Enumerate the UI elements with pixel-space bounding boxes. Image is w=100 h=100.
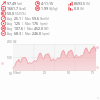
button[interactable]: Next segment [96,66,99,69]
staticText: (ft) [80,7,84,11]
staticText: Max [25,22,31,26]
button[interactable]: Previous segment [1,62,4,65]
staticText: (ft) [13,40,17,44]
button[interactable]: 50.0 [0,11,50,16]
staticText: (kJ/kg) [49,7,58,11]
staticText: / [22,22,24,26]
staticText: 50.0 [7,11,14,16]
button[interactable]: Avg [0,21,100,26]
staticText: Avg [7,17,13,21]
button[interactable]: Avg [0,26,100,31]
staticText: (kcal) [19,7,27,11]
staticText: (ft) [86,2,90,6]
staticText: (rpm) [40,22,48,26]
staticText: Avg [7,32,13,36]
button[interactable]: Avg [0,16,100,21]
staticText: / [24,27,26,31]
staticText: 125 [14,21,21,26]
staticText: (mi) [17,2,23,6]
staticText: 25 [43,71,46,75]
staticText: Max [27,27,33,31]
button[interactable]: 1.99 [34,6,67,11]
staticText: 50 [67,71,70,75]
staticText: 75 [91,71,94,75]
button[interactable]: Chart option [96,46,99,49]
staticText: Avg [7,27,13,31]
staticText: 452.0 [34,26,43,31]
staticText: 246.0 [32,31,41,36]
staticText: 107.6 [14,26,23,31]
button[interactable]: Elevation profile chart [0,40,100,76]
staticText: 50 [9,72,12,76]
button[interactable]: 4:11:15 [34,1,67,6]
staticText: 1.99 [41,6,48,11]
button[interactable]: Avg [0,31,100,36]
button[interactable]: 0.0 [67,6,100,11]
staticText: 1661.7 [7,6,18,11]
staticText: 68.3 [14,31,21,36]
staticText: 59.6 [32,16,39,21]
staticText: 0.0 [74,6,79,11]
staticText: / [22,32,24,36]
staticText: Avg [7,22,13,26]
staticText: 8693.5 [74,1,85,6]
staticText: 176 [32,21,39,26]
staticText: 50.0 (%) [15,12,26,16]
staticText: (W) [44,27,49,31]
staticText: 100 [7,56,12,60]
staticText: (rpm) [42,32,50,36]
button[interactable]: 97.49 [0,1,34,6]
staticText: 25.1 [14,16,21,21]
staticText: 97.49 [7,1,16,6]
button[interactable]: 1661.7 [0,6,34,11]
staticText: 4:11:15 [41,1,53,6]
staticText: 200 [7,40,12,44]
staticText: / [22,17,24,21]
button[interactable]: 8693.5 [67,1,100,6]
staticText: Max [25,32,31,36]
staticText: 0 (km) [13,71,21,75]
staticText: Max [25,17,31,21]
staticText: (km/h) [40,17,49,21]
